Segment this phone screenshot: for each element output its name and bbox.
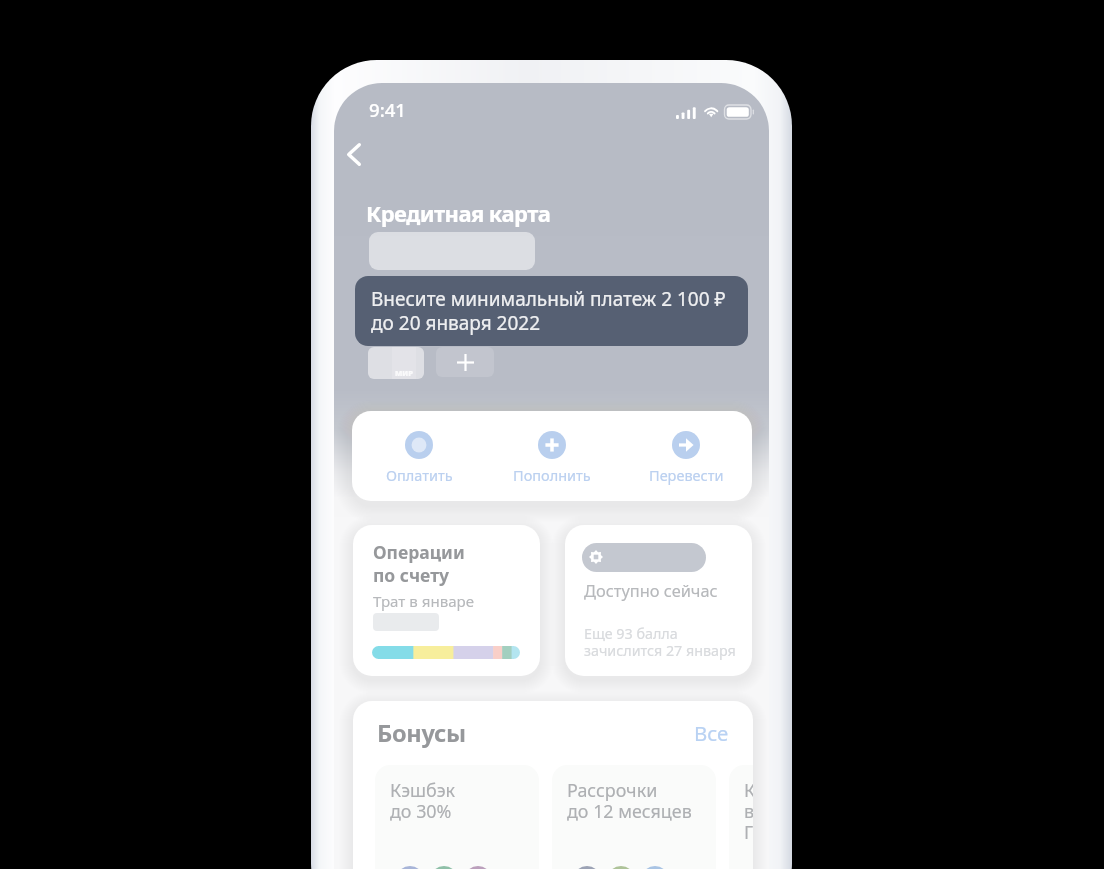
staticText: Пополнить xyxy=(513,465,591,485)
staticText: Рассрочки до 12 месяцев xyxy=(567,778,692,824)
button[interactable]: Back xyxy=(334,131,377,177)
button[interactable]: МИР card xyxy=(368,347,424,379)
button[interactable]: Доступно сейчас xyxy=(565,525,752,676)
button[interactable]: Внесите минимальный платеж 2 100 ₽ до 20… xyxy=(355,276,748,346)
button[interactable]: Операции по счету xyxy=(353,525,540,676)
staticText: Перевести xyxy=(649,465,724,485)
button[interactable]: Перевести xyxy=(628,415,744,497)
staticText: Бонусы xyxy=(377,717,466,749)
staticText: 9:41 xyxy=(369,97,406,122)
button[interactable]: Все xyxy=(694,719,729,747)
staticText: МИР xyxy=(395,368,413,378)
staticText: Трат в январе xyxy=(373,591,475,612)
button[interactable]: Кэшбэк в августе Г xyxy=(729,765,753,869)
staticText: Кэшбэк до 30% xyxy=(390,778,456,824)
button[interactable]: Add card xyxy=(436,347,494,377)
staticText: Оплатить xyxy=(386,465,453,485)
button[interactable]: Оплатить xyxy=(361,415,477,497)
button[interactable]: Кэшбэк до 30% xyxy=(375,765,539,869)
staticText: Все xyxy=(694,719,729,747)
staticText: Кредитная карта xyxy=(366,198,551,228)
button[interactable]: Рассрочки до 12 месяцев xyxy=(552,765,716,869)
staticText: Операции по счету xyxy=(373,540,465,587)
staticText: Кэшбэк в августе Г xyxy=(744,778,753,845)
staticText: Доступно сейчас xyxy=(584,579,718,601)
staticText: Внесите минимальный платеж 2 100 ₽ до 20… xyxy=(371,286,726,335)
staticText: Еще 93 балла зачислится 27 января xyxy=(584,624,736,661)
button[interactable]: Пополнить xyxy=(494,415,610,497)
